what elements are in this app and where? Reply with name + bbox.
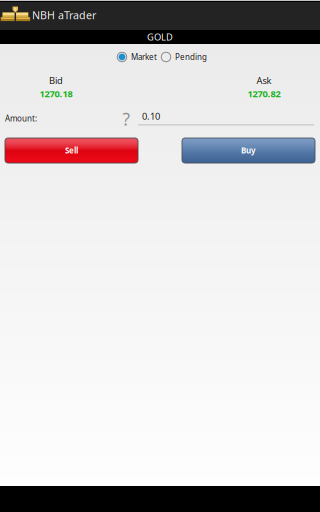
button[interactable]: Amount help: [120, 110, 133, 128]
staticText: 1270.82: [247, 87, 280, 100]
staticText: Amount:: [5, 113, 37, 124]
button[interactable]: Buy: [182, 138, 315, 163]
staticText: Sell: [65, 145, 78, 156]
staticText: Pending: [175, 52, 207, 62]
staticText: 0.10: [142, 110, 160, 122]
staticText: 1270.18: [39, 87, 72, 100]
button[interactable]: Sell: [5, 138, 138, 163]
staticText: Ask: [256, 74, 271, 86]
staticText: GOLD: [147, 31, 173, 43]
button[interactable]: Market: [117, 46, 157, 68]
staticText: ?: [122, 107, 130, 130]
staticText: Buy: [241, 145, 256, 156]
button[interactable]: Pending: [161, 46, 207, 68]
staticText: Market: [131, 52, 157, 62]
staticText: NBH aTrader: [32, 8, 96, 22]
staticText: Bid: [49, 74, 63, 86]
